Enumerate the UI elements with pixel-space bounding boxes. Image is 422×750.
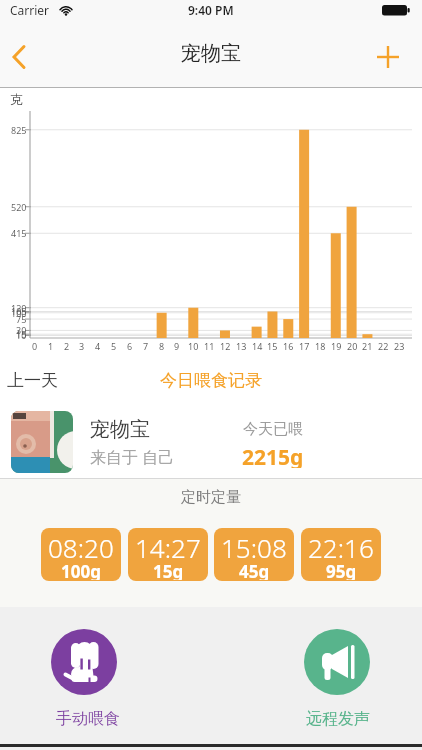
staticText: 7 [143, 340, 149, 352]
staticText: 15 [267, 340, 278, 352]
staticText: 08:20 [48, 530, 114, 560]
staticText: 825 [11, 124, 27, 136]
button[interactable]: 手动喂食 [44, 708, 132, 730]
staticText: 18 [315, 340, 326, 352]
staticText: 19 [331, 340, 342, 352]
button[interactable]: 08:20 [41, 528, 121, 581]
button[interactable] [366, 20, 410, 87]
staticText: 20 [347, 340, 358, 352]
staticText: 上一天 [7, 370, 58, 391]
staticText: Carrier [10, 2, 50, 18]
staticText: 75 [16, 313, 27, 325]
staticText: 8 [159, 340, 165, 352]
staticText: 120 [11, 302, 27, 314]
staticText: 5 [111, 340, 117, 352]
staticText: 0 [32, 340, 38, 352]
staticText: 15 [16, 328, 27, 340]
staticText: 3 [79, 340, 85, 352]
staticText: 14:27 [135, 530, 201, 560]
staticText: 100g [61, 560, 101, 580]
button[interactable]: 上一天 [7, 363, 77, 397]
staticText: 1 [48, 340, 54, 352]
staticText: 9 [174, 340, 180, 352]
staticText: 今日喂食记录 [160, 370, 262, 391]
staticText: 16 [283, 340, 294, 352]
staticText: 21 [362, 340, 373, 352]
staticText: 15g [153, 560, 184, 580]
staticText: 9:40 PM [188, 2, 234, 18]
button[interactable]: 今日喂食记录 [106, 363, 316, 397]
staticText: 415 [11, 227, 27, 239]
staticText: 10 [16, 329, 27, 341]
staticText: 手动喂食 [56, 709, 120, 729]
staticText: 14 [252, 340, 263, 352]
staticText: 11 [204, 340, 215, 352]
staticText: 12 [220, 340, 231, 352]
button[interactable]: 远程发声 [294, 708, 382, 730]
staticText: 22 [378, 340, 389, 352]
staticText: 今天已喂 [243, 420, 303, 439]
button[interactable]: 22:16 [301, 528, 381, 581]
staticText: 520 [11, 201, 27, 213]
staticText: 来自于 自己 [90, 446, 175, 467]
button[interactable] [0, 20, 44, 87]
staticText: 宠物宝 [181, 41, 241, 66]
button[interactable]: 14:27 [128, 528, 208, 581]
staticText: 17 [299, 340, 310, 352]
staticText: 4 [95, 340, 101, 352]
staticText: 95g [326, 560, 357, 580]
button[interactable] [48, 626, 128, 726]
staticText: 105 [11, 305, 27, 317]
staticText: 30 [16, 324, 27, 336]
staticText: 100 [11, 307, 27, 319]
button[interactable]: 15:08 [214, 528, 294, 581]
staticText: 宠物宝 [90, 417, 150, 442]
button[interactable] [301, 626, 381, 726]
staticText: 15:08 [221, 530, 287, 560]
staticText: 6 [127, 340, 133, 352]
staticText: 45g [239, 560, 270, 580]
staticText: 定时定量 [181, 488, 241, 506]
staticText: 2 [64, 340, 70, 352]
staticText: 2215g [242, 443, 304, 468]
button[interactable]: 宠物宝 [0, 398, 422, 478]
staticText: 22:16 [308, 530, 374, 560]
staticText: 23 [394, 340, 405, 352]
staticText: 远程发声 [306, 709, 370, 729]
staticText: 13 [236, 340, 247, 352]
staticText: 10 [188, 340, 199, 352]
staticText: 克 [10, 91, 23, 107]
